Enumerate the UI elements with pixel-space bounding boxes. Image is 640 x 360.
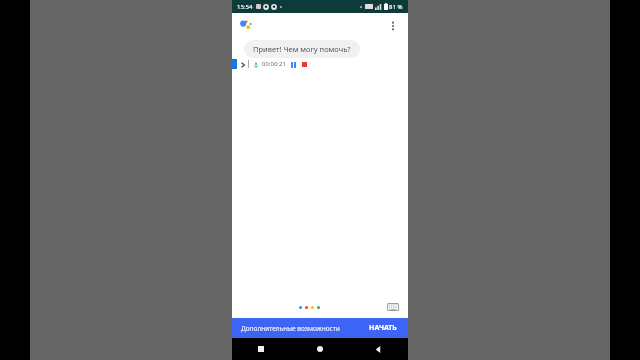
button[interactable]: Дополнительные возможности xyxy=(239,321,342,336)
staticText: Привет! Чем могу помочь? xyxy=(253,44,351,54)
button[interactable]: Pause recording xyxy=(290,61,297,68)
staticText: Дополнительные возможности xyxy=(241,324,340,333)
button[interactable]: Привет! Чем могу помочь? xyxy=(244,40,360,58)
staticText: 15:54 xyxy=(237,3,253,11)
button[interactable]: Home xyxy=(290,338,349,360)
button[interactable]: Microphone xyxy=(252,61,259,68)
staticText: НАЧАТЬ xyxy=(369,323,397,333)
staticText: 81 % xyxy=(389,3,403,11)
button[interactable]: Recent apps xyxy=(232,338,290,360)
button[interactable]: Expand xyxy=(239,61,246,68)
button[interactable]: More options xyxy=(384,17,402,35)
button[interactable]: НАЧАТЬ xyxy=(365,320,401,336)
staticText: 00:00:21 xyxy=(262,60,286,68)
button[interactable]: Back xyxy=(349,338,408,360)
button[interactable]: Stop recording xyxy=(301,61,308,68)
button[interactable]: Keyboard xyxy=(386,300,400,314)
